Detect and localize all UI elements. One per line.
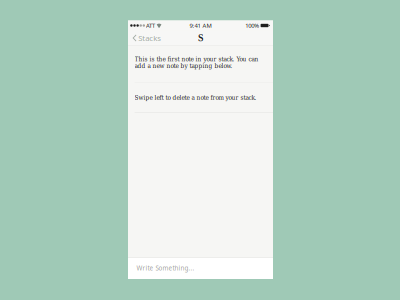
button[interactable]: Swipe left to delete a note from your st… — [128, 82, 273, 112]
staticText: ATT — [146, 21, 155, 29]
staticText: S — [198, 32, 203, 43]
button[interactable]: Stacks — [128, 30, 164, 45]
staticText: add a new note by tapping below. — [135, 62, 233, 69]
staticText: Write Something... — [136, 264, 194, 272]
staticText: 9:41 AM — [189, 21, 211, 29]
button[interactable]: This is the first note in your stack. Yo… — [128, 45, 273, 82]
staticText: This is the first note in your stack. Yo… — [135, 55, 259, 63]
button[interactable]: Write Something... — [128, 257, 273, 279]
staticText: 100% — [245, 21, 259, 29]
staticText: Stacks — [138, 33, 161, 43]
staticText: Swipe left to delete a note from your st… — [135, 94, 257, 101]
